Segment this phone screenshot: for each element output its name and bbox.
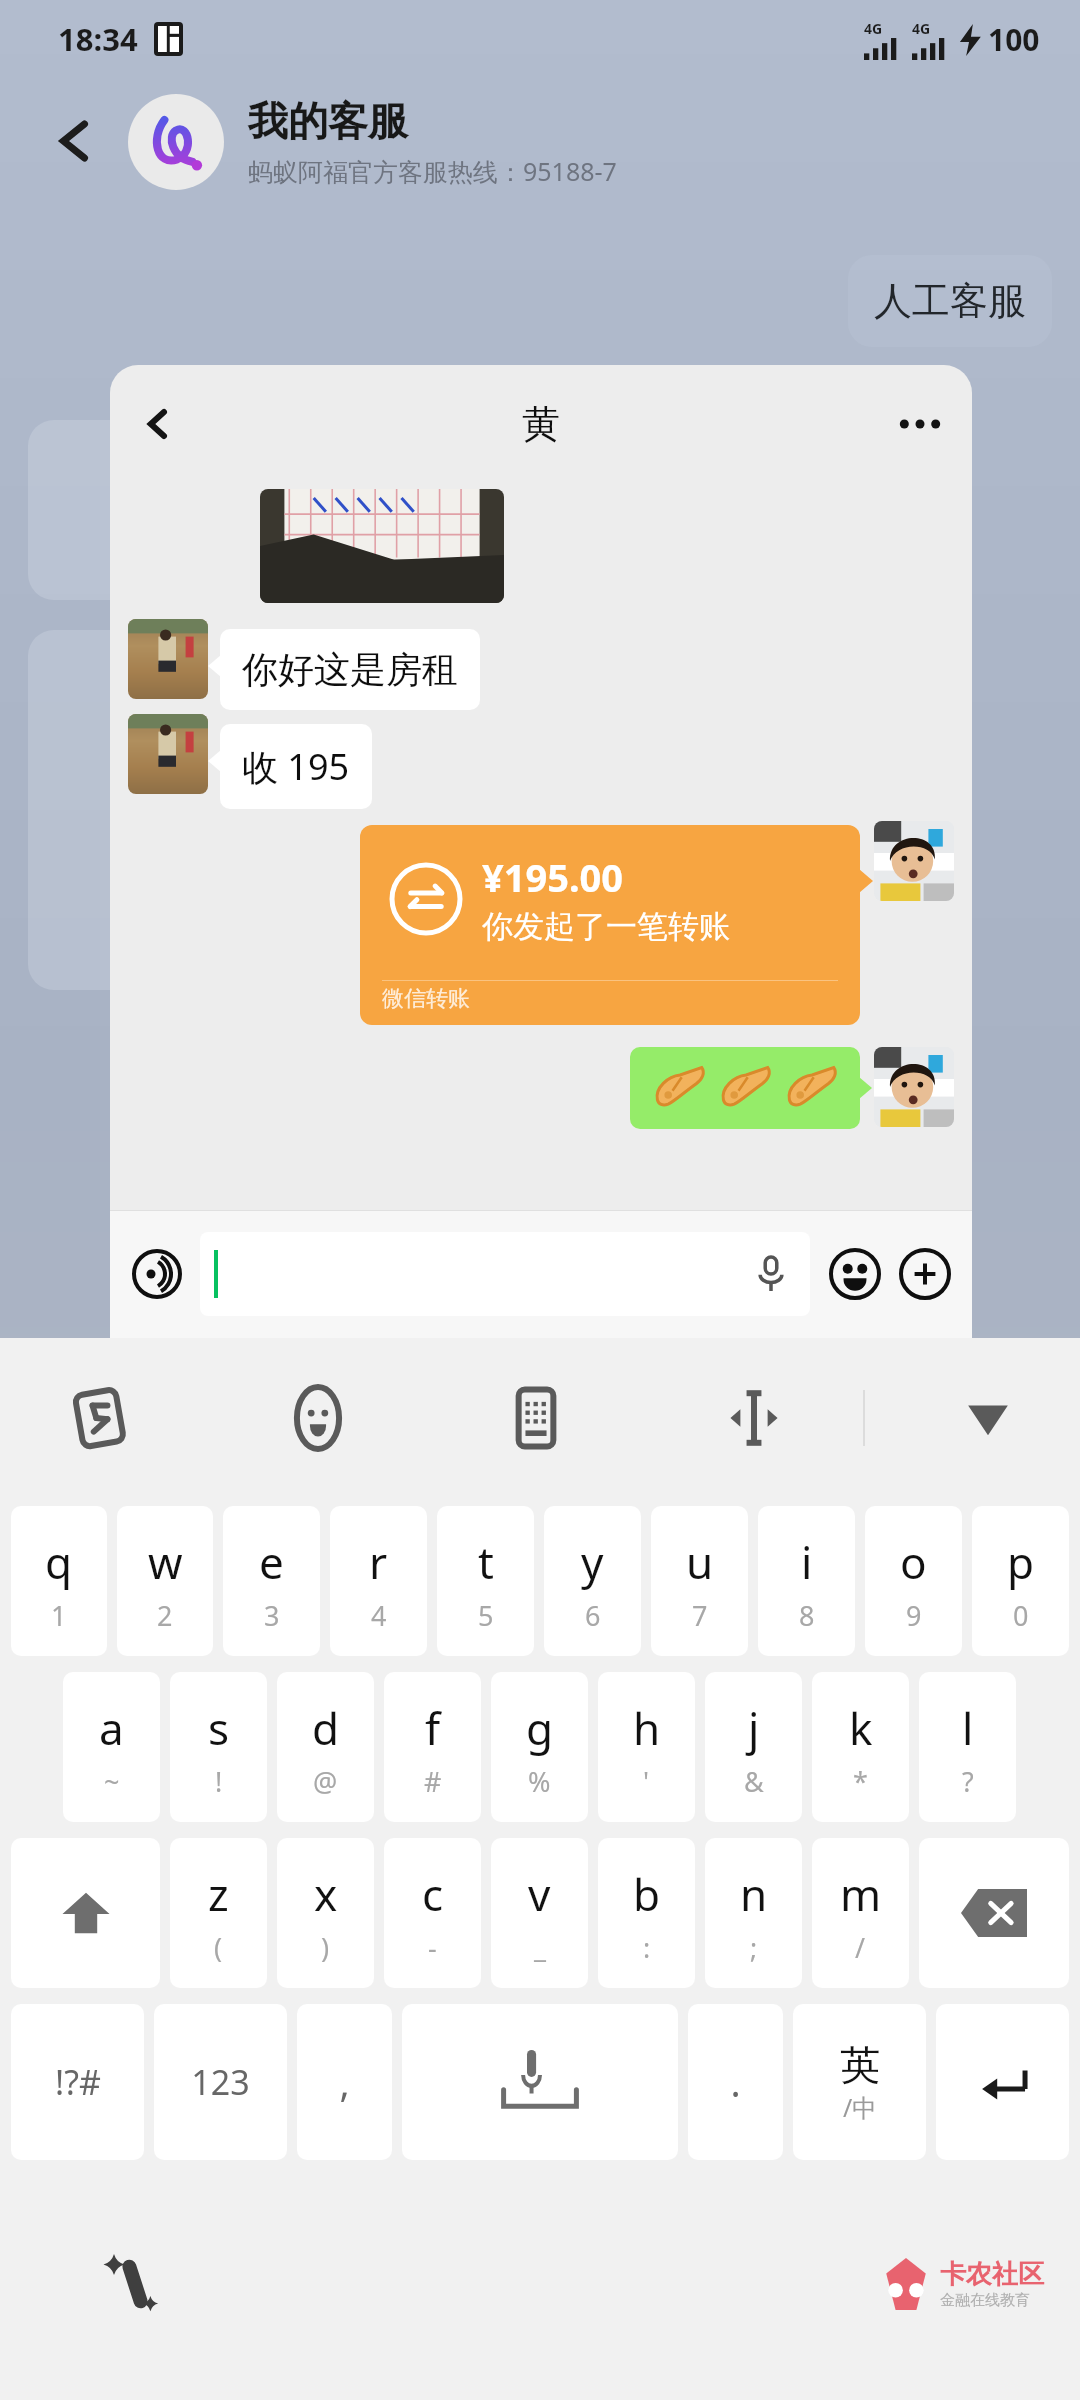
staticText: 人工客服 [874, 277, 1026, 325]
button[interactable]: Back [130, 396, 186, 452]
staticText: # [424, 1763, 442, 1800]
button[interactable]: b [598, 1838, 695, 1988]
staticText: a [99, 1698, 124, 1758]
staticText: n [740, 1864, 768, 1924]
button[interactable]: down [948, 1378, 1028, 1458]
button[interactable]: Enter [936, 2004, 1069, 2160]
button[interactable]: q [11, 1506, 107, 1656]
staticText: ' [643, 1763, 650, 1800]
staticText: 4G [864, 19, 883, 38]
staticText: 0 [1013, 1597, 1029, 1634]
button[interactable] [652, 1061, 838, 1115]
staticText: y [581, 1532, 604, 1592]
staticText: 金融在线教育 [940, 2291, 1030, 2310]
staticText: ( [214, 1929, 223, 1966]
button[interactable]: s [170, 1672, 267, 1822]
button[interactable]: u [651, 1506, 748, 1656]
button[interactable]: f [384, 1672, 481, 1822]
staticText: 100 [988, 19, 1040, 60]
button[interactable]: c [384, 1838, 481, 1988]
staticText: 4G [912, 19, 931, 38]
staticText: , [339, 2056, 350, 2108]
staticText: f [425, 1698, 441, 1758]
button[interactable]: Emoji [826, 1245, 884, 1303]
staticText: 4 [371, 1597, 387, 1634]
button[interactable]: Language [793, 2004, 926, 2160]
staticText: 7 [692, 1597, 708, 1634]
button[interactable]: d [277, 1672, 374, 1822]
button[interactable]: 123 [154, 2004, 287, 2160]
button[interactable]: . [688, 2004, 783, 2160]
button[interactable]: o [865, 1506, 962, 1656]
button[interactable]: Space [402, 2004, 678, 2160]
staticText: ) [321, 1929, 330, 1966]
staticText: 5 [478, 1597, 494, 1634]
button[interactable]: ¥195.00 [360, 825, 860, 1025]
staticText: s [208, 1698, 230, 1758]
button[interactable]: v [491, 1838, 588, 1988]
staticText: . [730, 2056, 741, 2108]
staticText: 英 [840, 2040, 880, 2090]
staticText: 我的客服 [248, 96, 408, 146]
button[interactable]: Back [40, 106, 110, 176]
button[interactable]: k [812, 1672, 909, 1822]
button[interactable]: y [544, 1506, 641, 1656]
staticText: 6 [585, 1597, 601, 1634]
staticText: r [369, 1532, 388, 1592]
button[interactable]: kb [496, 1378, 576, 1458]
staticText: t [478, 1532, 494, 1592]
button[interactable]: Voice input [128, 1245, 186, 1303]
staticText: 1 [51, 1597, 67, 1634]
button[interactable]: g [491, 1672, 588, 1822]
button[interactable]: Shift [11, 1838, 160, 1988]
button[interactable]: a [63, 1672, 160, 1822]
staticText: h [633, 1698, 661, 1758]
staticText: c [422, 1864, 444, 1924]
button[interactable]: p [972, 1506, 1069, 1656]
staticText: 卡农社区 [940, 2258, 1044, 2291]
button[interactable]: face [278, 1378, 358, 1458]
button[interactable]: More [896, 1245, 954, 1303]
button[interactable]: , [297, 2004, 392, 2160]
staticText: - [428, 1929, 437, 1966]
button[interactable]: e [223, 1506, 320, 1656]
button[interactable]: Magic [100, 2249, 170, 2319]
staticText: e [259, 1532, 284, 1592]
staticText: 蚂蚁阿福官方客服热线：95188-7 [248, 154, 617, 188]
button[interactable]: j [705, 1672, 802, 1822]
staticText: * [853, 1763, 868, 1800]
button[interactable]: !?# [11, 2004, 144, 2160]
button[interactable]: Backspace [919, 1838, 1069, 1988]
button[interactable] [200, 1232, 810, 1316]
staticText: ¥195.00 [482, 851, 624, 903]
staticText: _ [534, 1929, 546, 1966]
button[interactable]: 收 195 [242, 742, 350, 791]
button[interactable]: sogou [60, 1378, 140, 1458]
button[interactable]: w [117, 1506, 213, 1656]
staticText: o [900, 1532, 927, 1592]
staticText: 收 195 [242, 742, 350, 791]
staticText: % [528, 1763, 551, 1800]
button[interactable]: 人工客服 [874, 277, 1026, 325]
staticText: 你发起了一笔转账 [482, 907, 730, 946]
staticText: m [840, 1864, 882, 1924]
button[interactable]: n [705, 1838, 802, 1988]
button[interactable]: t [437, 1506, 534, 1656]
button[interactable]: cursor [714, 1378, 794, 1458]
button[interactable]: 你好这是房租 [242, 647, 458, 692]
button[interactable]: z [170, 1838, 267, 1988]
staticText: x [314, 1864, 338, 1924]
button[interactable]: i [758, 1506, 855, 1656]
button[interactable]: m [812, 1838, 909, 1988]
button[interactable]: l [919, 1672, 1016, 1822]
staticText: w [148, 1532, 183, 1592]
button[interactable]: More options [892, 396, 948, 452]
staticText: q [45, 1532, 73, 1592]
staticText: 微信转账 [382, 985, 470, 1013]
staticText: & [744, 1763, 764, 1800]
staticText: 3 [264, 1597, 280, 1634]
button[interactable]: x [277, 1838, 374, 1988]
staticText: j [748, 1698, 760, 1758]
button[interactable]: r [330, 1506, 427, 1656]
button[interactable]: h [598, 1672, 695, 1822]
